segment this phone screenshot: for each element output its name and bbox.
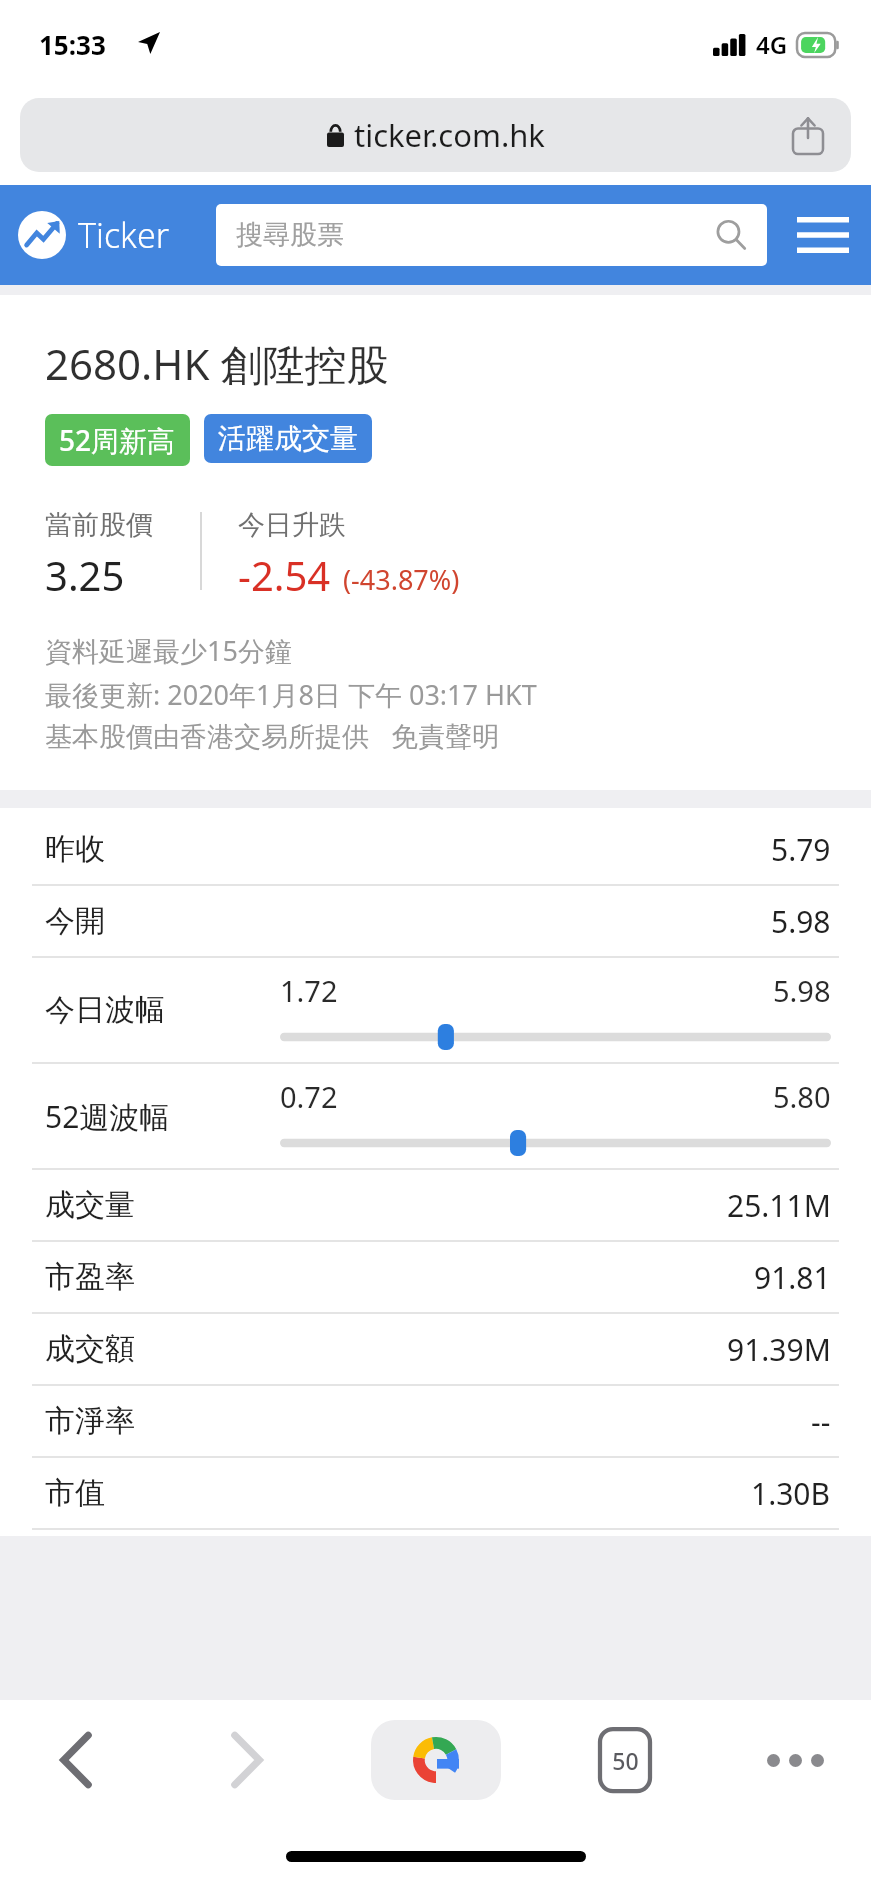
staticText: 成交額 — [45, 1330, 135, 1368]
staticText: 5.80 — [773, 1077, 831, 1116]
button[interactable]: Ticker — [18, 211, 170, 259]
staticText: 3.25 — [45, 548, 125, 602]
staticText: 基本股價由香港交易所提供 — [45, 720, 369, 754]
button[interactable]: More — [749, 1714, 841, 1806]
staticText: 15:33 — [39, 27, 106, 62]
staticText: (-43.87%) — [343, 561, 460, 598]
staticText: 搜尋股票 — [236, 218, 344, 252]
button[interactable]: Google Search — [371, 1720, 501, 1800]
button[interactable]: Back — [30, 1714, 122, 1806]
staticText: 1.72 — [280, 971, 338, 1010]
staticText: 50 — [612, 1745, 639, 1776]
button[interactable]: Tabs — [579, 1714, 671, 1806]
staticText: 91.81 — [754, 1257, 831, 1298]
button[interactable]: 52周新高 — [45, 414, 190, 466]
button[interactable]: 成交量 — [0, 1170, 871, 1240]
button[interactable]: 市淨率 — [0, 1386, 871, 1456]
button[interactable]: 市盈率 — [0, 1242, 871, 1312]
button[interactable]: 今日波幅 — [0, 958, 871, 1062]
button[interactable]: 搜尋股票 — [216, 204, 767, 266]
staticText: 昨收 — [45, 830, 105, 868]
staticText: 成交量 — [45, 1186, 135, 1224]
staticText: 今日波幅 — [45, 991, 280, 1029]
staticText: 52週波幅 — [45, 1096, 280, 1137]
staticText: 市值 — [45, 1474, 105, 1512]
staticText: -- — [811, 1401, 831, 1442]
button[interactable]: 今開 — [0, 886, 871, 956]
staticText: -2.54 — [238, 548, 331, 602]
staticText: Ticker — [78, 212, 170, 258]
button[interactable]: 52週波幅 — [0, 1064, 871, 1168]
staticText: 5.98 — [771, 901, 831, 942]
staticText: 0.72 — [280, 1077, 338, 1116]
button[interactable]: Forward — [201, 1714, 293, 1806]
staticText: 當前股價 — [45, 508, 153, 542]
staticText: 5.79 — [771, 829, 831, 870]
button[interactable]: 市值 — [0, 1458, 871, 1528]
button[interactable]: 成交額 — [0, 1314, 871, 1384]
staticText: ticker.com.hk — [354, 114, 545, 156]
staticText: 2680.HK 創陞控股 — [45, 335, 389, 392]
staticText: 5.98 — [773, 971, 831, 1010]
button[interactable]: 昨收 — [0, 814, 871, 884]
staticText: 52周新高 — [59, 421, 176, 459]
staticText: 25.11M — [727, 1185, 831, 1226]
button[interactable]: 活躍成交量 — [204, 414, 372, 463]
staticText: 市盈率 — [45, 1258, 135, 1296]
button[interactable]: ticker.com.hk — [20, 98, 851, 172]
staticText: 資料延遲最少15分鐘 — [45, 632, 292, 669]
staticText: 4G — [756, 28, 788, 61]
staticText: 91.39M — [727, 1329, 831, 1370]
staticText: 今開 — [45, 902, 105, 940]
staticText: 今日升跌 — [238, 508, 346, 542]
staticText: 最後更新: 2020年1月8日 下午 03:17 HKT — [45, 676, 537, 713]
staticText: 活躍成交量 — [218, 421, 358, 456]
button[interactable]: Menu — [793, 205, 853, 265]
staticText: 市淨率 — [45, 1402, 135, 1440]
button[interactable]: 免責聲明 — [391, 720, 499, 754]
button[interactable]: Share — [781, 108, 835, 162]
staticText: 1.30B — [751, 1473, 831, 1514]
